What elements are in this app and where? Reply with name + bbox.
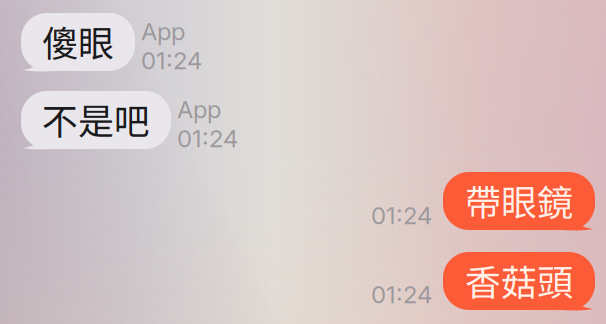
button[interactable]: 香菇頭	[443, 252, 595, 310]
staticText: 傻眼	[42, 15, 114, 67]
staticText: 香菇頭	[465, 254, 573, 306]
button[interactable]: 不是吧	[21, 91, 171, 149]
staticText: 01:24	[141, 46, 202, 75]
staticText: 01:24	[177, 124, 238, 153]
staticText: 01:24	[371, 280, 432, 309]
staticText: 不是吧	[42, 93, 150, 145]
staticText: App	[177, 95, 221, 124]
staticText: 01:24	[371, 201, 432, 230]
button[interactable]: 帶眼鏡	[443, 172, 595, 230]
staticText: App	[141, 17, 185, 46]
staticText: 帶眼鏡	[465, 174, 573, 226]
button[interactable]: 傻眼	[21, 13, 135, 71]
